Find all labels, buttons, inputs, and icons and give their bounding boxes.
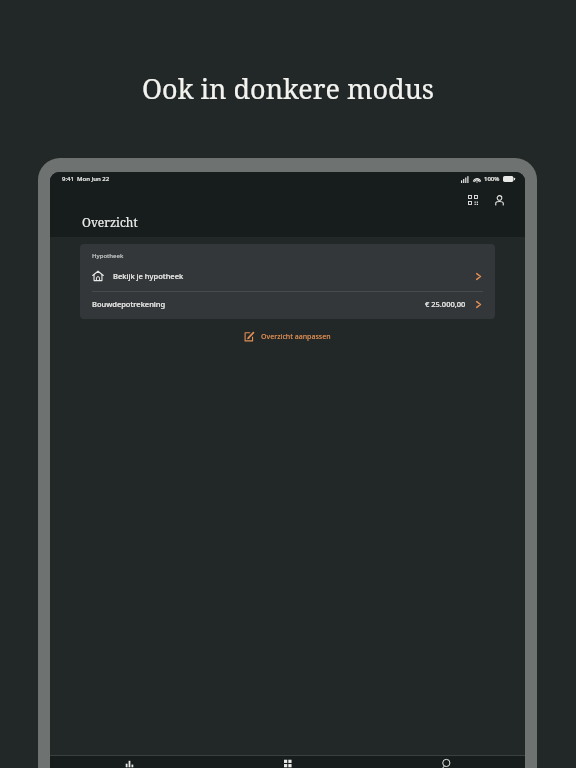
staticText: 100% [484, 175, 500, 183]
staticText: 9:41 Mon Jun 22 [62, 175, 110, 183]
button[interactable]: Contact [367, 756, 525, 768]
staticText: € 25.000,00 [425, 299, 466, 309]
button[interactable]: Bouwdepotrekening [80, 292, 495, 316]
staticText: Ook in donkere modus [142, 70, 434, 107]
button[interactable]: Profile [491, 192, 508, 209]
staticText: Overzicht aanpassen [261, 332, 331, 342]
staticText: Overzicht [82, 214, 138, 230]
button[interactable]: Overzicht aanpassen [238, 328, 337, 345]
button[interactable]: Producten [209, 756, 367, 768]
staticText: Bouwdepotrekening [92, 299, 166, 309]
staticText: Hypotheek [92, 252, 124, 260]
button[interactable]: Bekijk je hypotheek [80, 265, 495, 287]
staticText: Bekijk je hypotheek [113, 271, 184, 281]
button[interactable]: Overzicht [50, 756, 209, 768]
button[interactable]: QR code scanner [465, 192, 482, 209]
